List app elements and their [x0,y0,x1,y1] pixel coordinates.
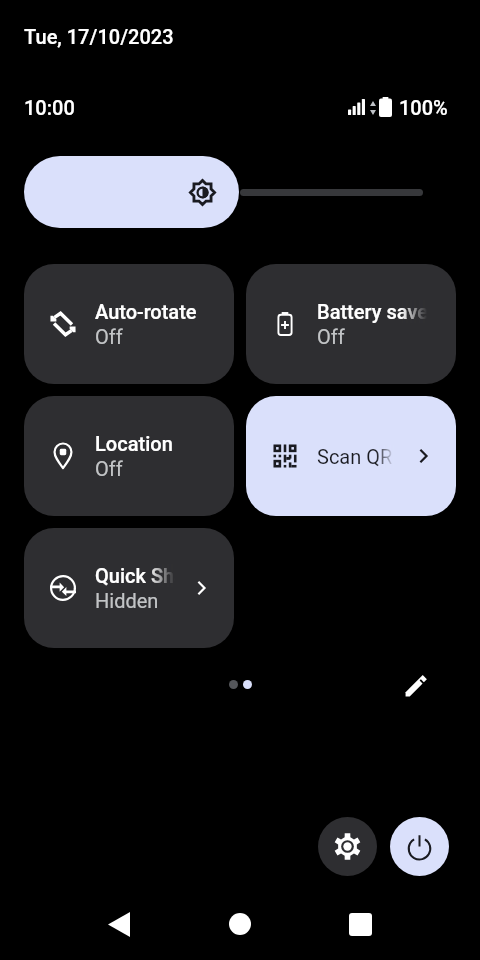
staticText: Off [95,325,123,348]
staticText: Quick Share [95,564,175,587]
button[interactable]: Brightness [24,156,239,228]
button[interactable]: Settings [318,817,377,876]
button[interactable]: Back [86,892,151,956]
button[interactable]: Auto-rotate [24,264,234,384]
button[interactable]: Home [208,892,272,956]
button[interactable]: Quick Share [24,528,234,648]
staticText: 10:00 [24,96,75,119]
staticText: Off [317,325,345,348]
button[interactable]: Power [390,817,449,876]
staticText: Location [95,432,173,455]
button[interactable]: Edit tiles [398,666,436,704]
staticText: Auto-rotate [95,300,197,323]
staticText: Battery saver [317,300,427,323]
button[interactable]: Recent apps [328,892,392,956]
button[interactable]: Location [24,396,234,516]
staticText: Off [95,457,123,480]
button[interactable]: Battery saver [246,264,456,384]
staticText: 100% [399,96,448,119]
button[interactable]: Scan QR code [246,396,456,516]
staticText: Scan QR code [317,445,394,468]
staticText: Tue, 17/10/2023 [24,25,174,48]
staticText: Hidden [95,589,159,612]
